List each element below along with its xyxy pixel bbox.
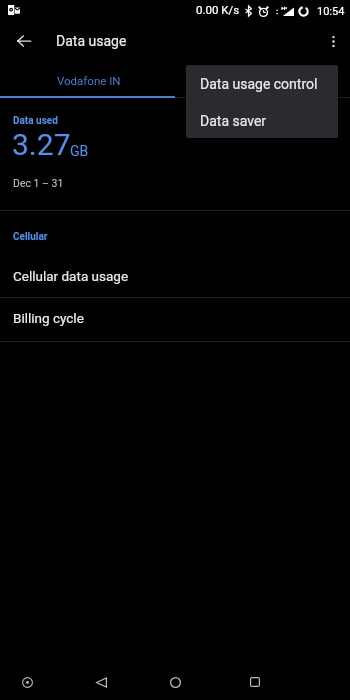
button[interactable]: Home [155,662,195,700]
staticText: Data usage [56,33,127,49]
staticText: 3.27 [12,127,71,162]
staticText: Dec 1 – 31 [13,177,64,189]
button[interactable]: Billing cycle [0,296,350,339]
button[interactable]: Back [7,24,40,57]
button[interactable]: Data usage control [186,65,338,102]
button[interactable]: Data saver [186,104,338,138]
staticText: Cellular data usage [13,268,129,284]
button[interactable]: Recents [235,662,275,700]
staticText: Billing cycle [13,310,84,326]
staticText: Data used [13,115,58,127]
staticText: Data saver [200,113,267,129]
staticText: GB [70,143,89,159]
button[interactable]: Vodafone IN [0,59,175,98]
staticText: Data usage control [200,76,318,92]
staticText: 10:54 [317,5,345,18]
button[interactable]: Cellular data usage [0,254,350,297]
staticText: 0.00 K/s [196,3,240,16]
staticText: Vodafone IN [57,74,121,87]
staticText: Cellular [13,231,48,243]
button[interactable]: Assistant [7,662,47,700]
button[interactable]: More options [317,25,349,57]
button[interactable]: Back [81,662,121,700]
